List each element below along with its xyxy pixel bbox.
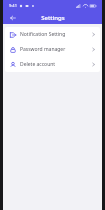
staticText: Password manager [20,46,92,53]
staticText: Settings [41,14,65,22]
button[interactable]: Back [8,13,18,23]
button[interactable]: Notification Setting [5,27,100,42]
button[interactable]: Password manager [5,42,100,57]
staticText: Notification Setting [20,31,92,38]
staticText: Delete account [20,61,92,68]
button[interactable]: Delete account [5,57,100,72]
staticText: 9:41 [9,3,17,8]
